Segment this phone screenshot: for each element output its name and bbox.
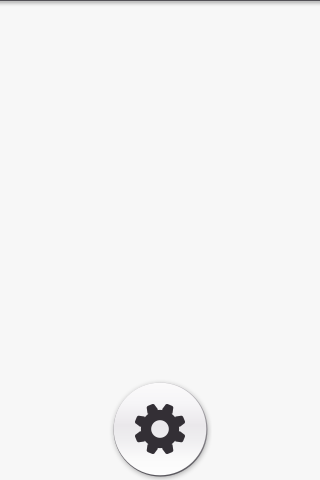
button[interactable]: Settings xyxy=(113,382,207,476)
